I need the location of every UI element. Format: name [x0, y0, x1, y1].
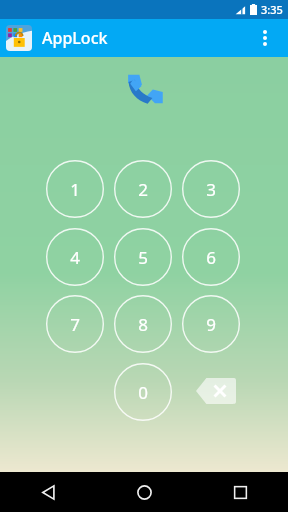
button[interactable]: 0 — [114, 363, 172, 421]
button[interactable]: 5 — [114, 228, 172, 286]
staticText: 9 — [206, 313, 216, 336]
button[interactable]: 7 — [46, 295, 104, 353]
button[interactable]: 9 — [182, 295, 240, 353]
button[interactable]: Back — [0, 472, 96, 512]
staticText: 6 — [206, 246, 216, 269]
button[interactable]: 2 — [114, 160, 172, 218]
staticText: 1 — [70, 178, 80, 201]
staticText: AppLock — [42, 27, 108, 49]
staticText: 3 — [206, 178, 216, 201]
button[interactable]: 1 — [46, 160, 104, 218]
staticText: 8 — [138, 313, 148, 336]
button[interactable]: 4 — [46, 228, 104, 286]
button[interactable]: Home — [96, 472, 192, 512]
staticText: 0 — [138, 381, 148, 404]
button[interactable]: Recents — [192, 472, 288, 512]
staticText: 5 — [138, 246, 148, 269]
button[interactable]: More options — [248, 21, 282, 55]
button[interactable]: 6 — [182, 228, 240, 286]
staticText: 4 — [70, 246, 80, 269]
button[interactable]: 8 — [114, 295, 172, 353]
staticText: 7 — [70, 313, 80, 336]
button[interactable]: 3 — [182, 160, 240, 218]
staticText: 2 — [138, 178, 148, 201]
button[interactable]: Backspace — [194, 374, 238, 408]
staticText: 3:35 — [261, 2, 283, 17]
